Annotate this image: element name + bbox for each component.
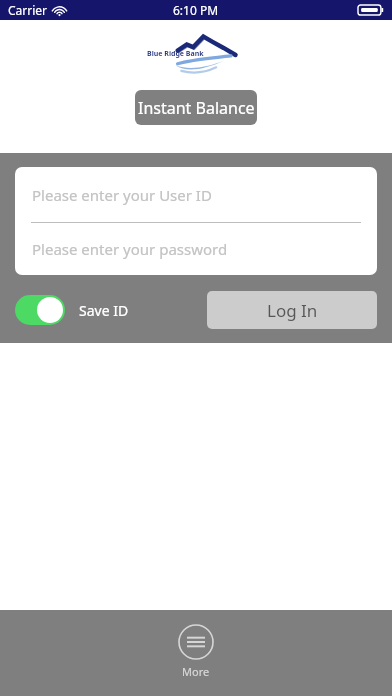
staticText: More — [182, 664, 210, 679]
staticText: Log In — [267, 299, 318, 322]
staticText: 6:10 PM — [173, 2, 219, 18]
staticText: Instant Balance — [138, 97, 255, 119]
button[interactable]: Please enter your password — [15, 223, 377, 275]
staticText: Save ID — [79, 301, 129, 320]
button[interactable]: Save ID — [15, 295, 129, 325]
staticText: Blue Ridge Bank — [147, 49, 204, 59]
button[interactable]: Instant Balance — [135, 90, 257, 125]
button[interactable]: More — [164, 622, 228, 681]
button[interactable]: Log In — [207, 291, 377, 329]
button[interactable]: Please enter your User ID — [15, 167, 377, 222]
staticText: Please enter your password — [32, 239, 228, 259]
staticText: Please enter your User ID — [32, 185, 212, 205]
staticText: Carrier — [8, 2, 48, 18]
